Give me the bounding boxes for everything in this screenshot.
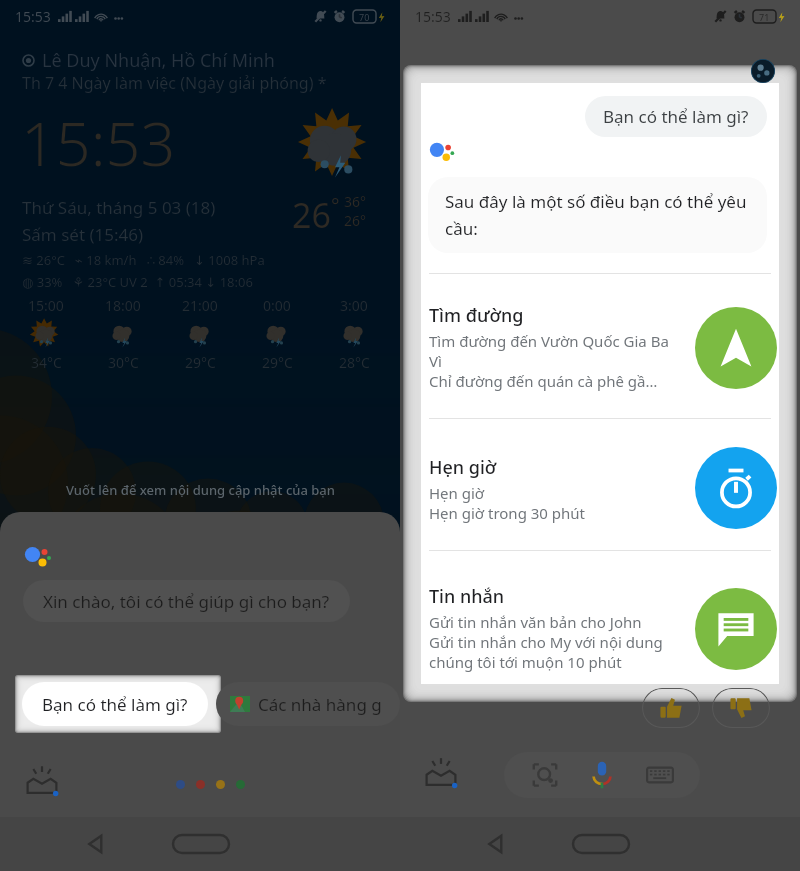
staticText: chúng tôi tới muộn 10 phút	[429, 652, 622, 672]
staticText: 15:53	[21, 101, 176, 184]
button[interactable]	[421, 441, 779, 529]
staticText: 36°	[344, 192, 367, 211]
button[interactable]: Thumbs up	[642, 688, 700, 728]
staticText: Tin nhắn	[429, 584, 505, 609]
staticText: 71	[759, 11, 770, 23]
button[interactable]: Back	[484, 832, 508, 856]
staticText: °	[331, 192, 340, 219]
staticText: Bạn có thể làm gì?	[603, 105, 749, 128]
button[interactable]: Bạn có thể làm gì?	[22, 682, 208, 726]
staticText: Vì	[429, 351, 442, 371]
staticText: ≋ 26°C ⌁ 18 km/h ∴ 84% ↓ 1008 hPa	[22, 251, 265, 269]
staticText: 28°C	[339, 353, 370, 372]
button[interactable]: Google Lens	[528, 758, 562, 792]
button[interactable]: Home	[172, 834, 230, 854]
staticText: 26	[292, 192, 331, 238]
staticText: 21:00	[182, 296, 218, 315]
staticText: Hẹn giờ	[429, 455, 497, 480]
button[interactable]: Bạn có thể làm gì?	[585, 96, 767, 137]
button[interactable]: Account	[751, 59, 775, 83]
button[interactable]: Keyboard	[643, 758, 677, 792]
button[interactable]: Xin chào, tôi có thể giúp gì cho bạn?	[23, 580, 350, 622]
button[interactable]: Microphone	[585, 758, 619, 792]
staticText: Gửi tin nhắn cho My với nội dung	[429, 632, 663, 652]
staticText: Thứ Sáu, tháng 5 03 (18)	[22, 196, 216, 219]
staticText: 29°C	[185, 353, 216, 372]
button[interactable]: Explore	[423, 756, 459, 792]
staticText: Chỉ đường đến quán cà phê gầ…	[429, 371, 658, 391]
button[interactable]: Back	[84, 832, 108, 856]
button[interactable]	[421, 570, 779, 679]
staticText: 30°C	[108, 353, 139, 372]
staticText: 0:00	[263, 296, 291, 315]
staticText: Sấm sét (15:46)	[22, 223, 144, 246]
staticText: Hẹn giờ trong 30 phút	[429, 503, 586, 523]
staticText: Vuốt lên để xem nội dung cập nhật của bạ…	[66, 481, 335, 499]
staticText: 15:53	[15, 7, 51, 26]
staticText: 18:00	[105, 296, 141, 315]
staticText: 3:00	[340, 296, 368, 315]
staticText: Các nhà hàng gần	[258, 693, 382, 716]
button[interactable]: Các nhà hàng gần	[216, 682, 400, 726]
staticText: 15:00	[28, 296, 64, 315]
staticText: Gửi tin nhắn văn bản cho John	[429, 612, 642, 632]
staticText: Sau đây là một số điều bạn có thể yêu cầ…	[445, 190, 750, 240]
staticText: 26°	[344, 211, 367, 230]
button[interactable]	[421, 289, 779, 398]
button[interactable]: Home	[572, 834, 630, 854]
button[interactable]: Sau đây là một số điều bạn có thể yêu cầ…	[428, 177, 767, 253]
staticText: ◍ 33% ⚘ 23°C UV 2 ↑ 05:34 ↓ 18:06	[22, 273, 253, 291]
button[interactable]: Explore	[24, 764, 60, 800]
staticText: Bạn có thể làm gì?	[42, 693, 188, 716]
staticText: 29°C	[262, 353, 293, 372]
staticText: 34°C	[31, 353, 62, 372]
button[interactable]: Thumbs down	[712, 688, 770, 728]
staticText: Tìm đường đến Vườn Quốc Gia Ba	[429, 331, 669, 351]
staticText: 70	[359, 11, 370, 23]
staticText: Th 7 4 Ngày làm việc (Ngày giải phóng) *	[22, 72, 327, 94]
staticText: 15:53	[415, 7, 451, 26]
staticText: Lê Duy Nhuận, Hồ Chí Minh	[42, 48, 275, 73]
staticText: Hẹn giờ	[429, 483, 485, 503]
staticText: Xin chào, tôi có thể giúp gì cho bạn?	[43, 590, 330, 613]
staticText: Tìm đường	[429, 303, 524, 328]
